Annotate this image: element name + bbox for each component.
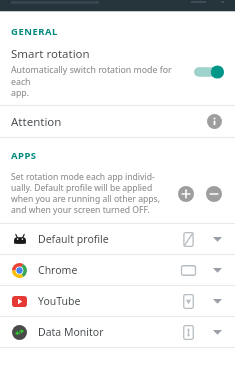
staticText: YouTube [38, 294, 81, 308]
staticText: Automatically switch rotation mode for e… [11, 64, 187, 98]
button[interactable]: Rotation mode [180, 262, 197, 279]
staticText: Data Monitor [38, 325, 104, 339]
button[interactable]: Attention info [207, 114, 222, 129]
button[interactable]: Data Monitor [0, 317, 235, 347]
staticText: Smart rotation [11, 46, 90, 62]
button[interactable]: Change rotation mode for Default profile [210, 232, 224, 246]
staticText: GENERAL [11, 25, 58, 38]
button[interactable]: Change rotation mode for Chrome [210, 263, 224, 277]
staticText: APPS [11, 149, 37, 162]
button[interactable]: YouTube [0, 286, 235, 316]
button[interactable]: Change rotation mode for Data Monitor [210, 325, 224, 339]
button[interactable]: Attention [0, 106, 235, 137]
button[interactable]: Remove app [206, 186, 222, 202]
staticText: Default profile [38, 232, 109, 246]
staticText: Attention [11, 114, 62, 130]
staticText: Set rotation mode each app individ- uall… [11, 171, 160, 216]
button[interactable]: Rotation mode [180, 293, 197, 310]
button[interactable]: Rotation mode [180, 231, 197, 248]
button[interactable]: Default profile [0, 224, 235, 254]
button[interactable]: Rotation mode [180, 324, 197, 341]
button[interactable]: Add app [178, 186, 194, 202]
button[interactable]: Smart rotation toggle [192, 62, 226, 82]
button[interactable]: Change rotation mode for YouTube [210, 294, 224, 308]
button[interactable]: Chrome [0, 255, 235, 285]
staticText: Chrome [38, 263, 78, 277]
button[interactable]: Smart rotation [0, 40, 235, 105]
